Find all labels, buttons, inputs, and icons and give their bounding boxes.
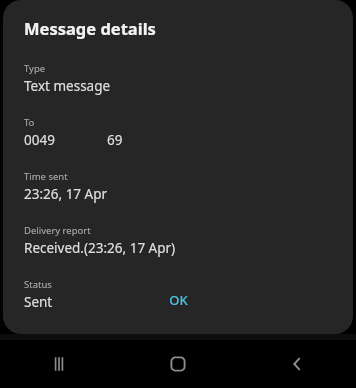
staticText: Delivery report bbox=[24, 224, 91, 237]
staticText: 23:26, 17 Apr bbox=[24, 185, 108, 203]
staticText: Message details bbox=[24, 17, 156, 39]
staticText: 69 bbox=[107, 131, 123, 149]
staticText: To bbox=[24, 116, 35, 129]
staticText: Sent bbox=[24, 293, 53, 311]
button[interactable]: Back bbox=[237, 340, 356, 388]
staticText: Text message bbox=[24, 77, 111, 95]
staticText: 0049 bbox=[24, 131, 55, 149]
button[interactable]: OK bbox=[143, 284, 214, 316]
staticText: OK bbox=[169, 291, 188, 309]
button[interactable]: Home bbox=[118, 340, 237, 388]
staticText: Status bbox=[24, 278, 52, 291]
staticText: Type bbox=[24, 62, 46, 75]
staticText: Received.(23:26, 17 Apr) bbox=[24, 239, 176, 257]
staticText: Time sent bbox=[24, 170, 68, 183]
button[interactable]: Recent apps bbox=[0, 340, 118, 388]
